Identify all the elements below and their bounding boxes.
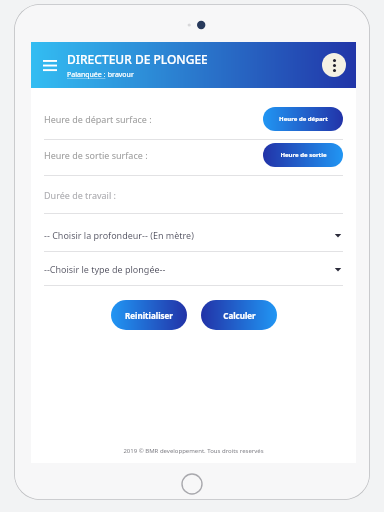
button[interactable]: Palanquée : [67, 70, 106, 80]
staticText: -- Choisir la profondeur-- (En mètre) [44, 229, 333, 241]
staticText: Calculer [223, 310, 256, 321]
staticText: Reinitialiser [125, 310, 173, 321]
staticText: Heure de sortie [280, 151, 327, 159]
staticText: Durée de travail : [44, 189, 343, 201]
button[interactable]: Heure de sortie [263, 143, 343, 167]
button[interactable]: Reinitialiser [111, 300, 187, 330]
staticText: 2019 © BMR developpement. Tous droits re… [31, 447, 356, 455]
staticText: Heure de départ surface : [44, 113, 263, 125]
button[interactable]: Heure de départ [263, 107, 343, 131]
staticText: bravour [106, 70, 134, 80]
staticText: Heure de sortie surface : [44, 149, 263, 161]
staticText: Heure de départ [279, 115, 328, 123]
button[interactable]: More options [322, 53, 346, 77]
button[interactable]: Menu [37, 52, 63, 78]
staticText: --Choisir le type de plongée-- [44, 263, 333, 275]
button[interactable]: Calculer [201, 300, 277, 330]
staticText: DIRECTEUR DE PLONGEE [67, 51, 208, 67]
